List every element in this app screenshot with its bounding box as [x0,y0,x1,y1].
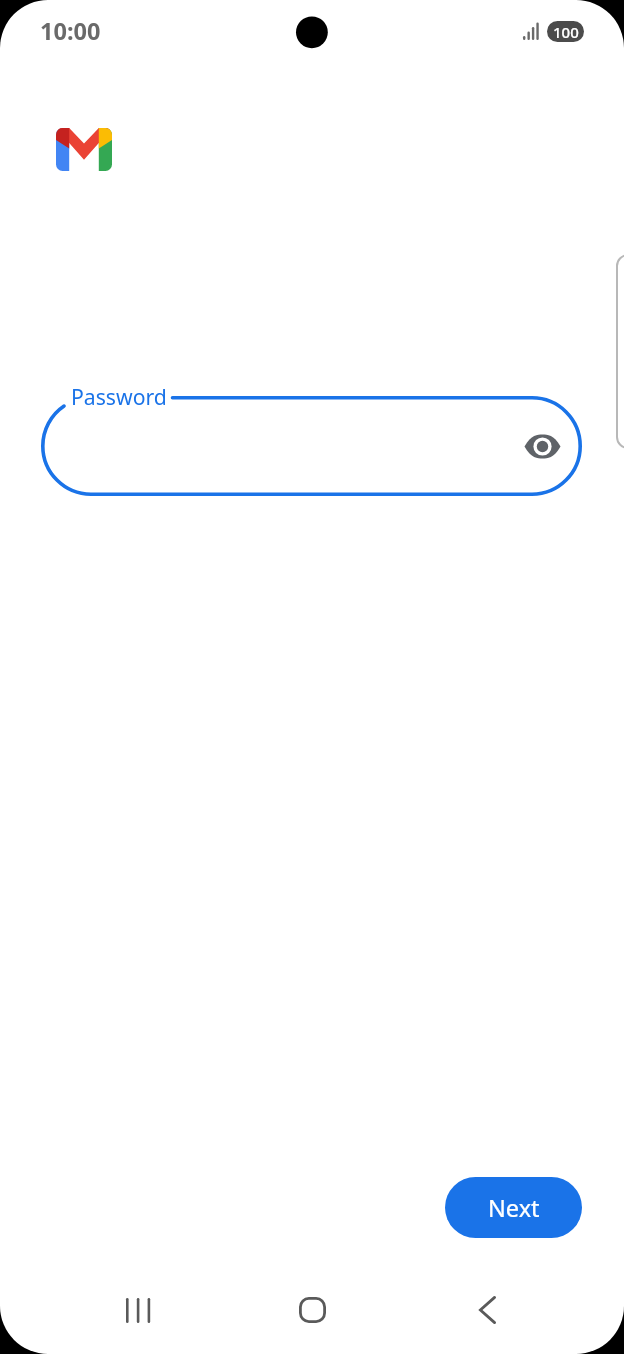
button[interactable]: Home [278,1276,346,1344]
staticText: 100 [553,22,579,42]
staticText: Next [488,1192,540,1224]
button[interactable]: Back [453,1276,521,1344]
button[interactable]: Show password [518,422,566,470]
button[interactable]: Recent apps [104,1276,172,1344]
staticText: Password [71,382,167,411]
button[interactable]: Password text field [41,396,582,496]
button[interactable]: Next [445,1177,582,1238]
staticText: 10:00 [40,15,101,47]
